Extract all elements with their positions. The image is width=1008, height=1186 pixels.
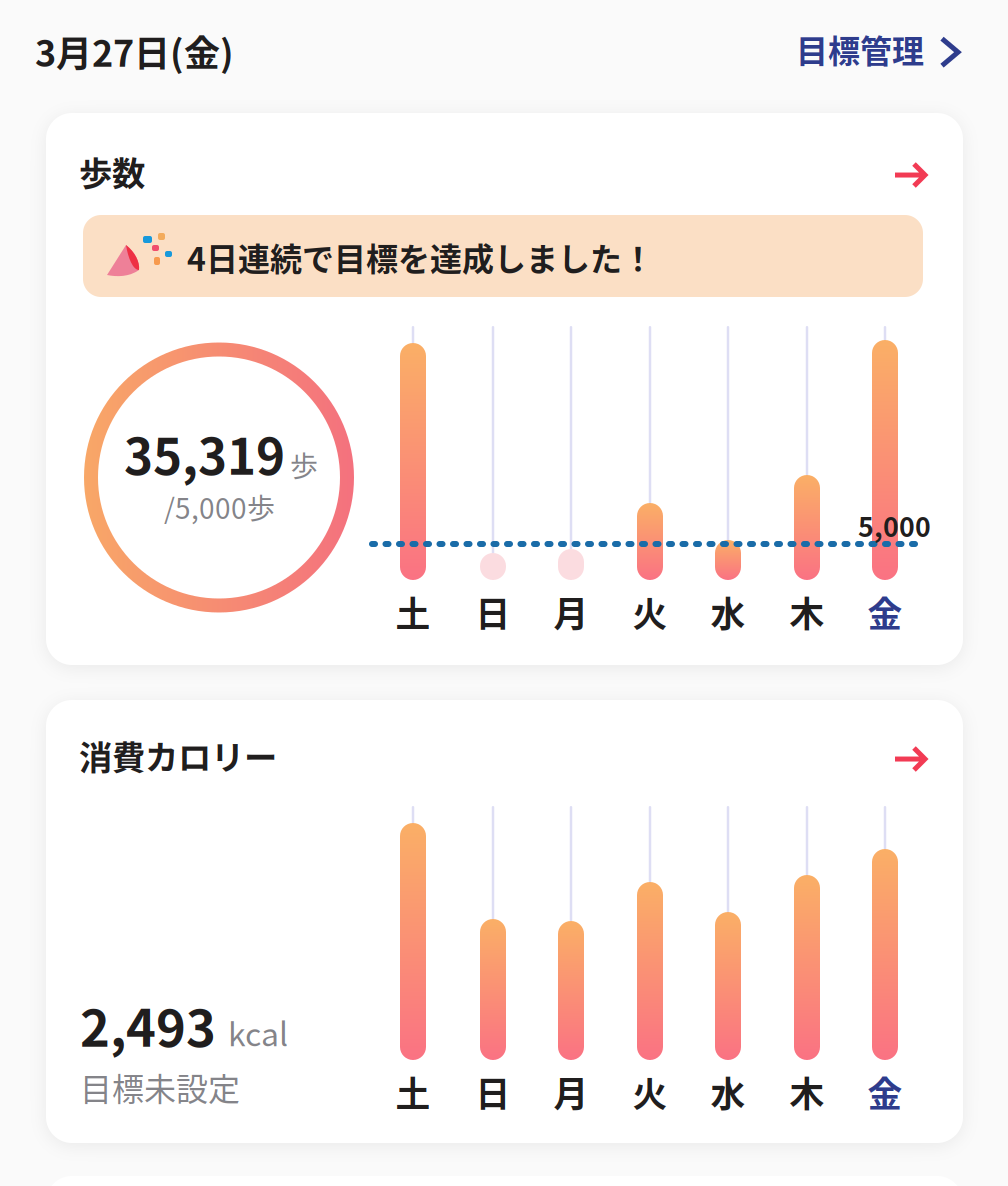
staticText: 金 [867, 587, 902, 637]
staticText: 木 [789, 1067, 824, 1117]
staticText: 3月27日(金) [35, 25, 234, 77]
staticText: 土 [395, 587, 430, 637]
staticText: 目標管理 [796, 26, 924, 72]
staticText: 歩数 [79, 147, 145, 195]
staticText: 金 [867, 1067, 902, 1117]
staticText: 日 [475, 587, 510, 637]
staticText: 火 [632, 1067, 667, 1117]
staticText: 月 [553, 587, 588, 637]
staticText: 2,493 [80, 988, 216, 1061]
staticText: 日 [475, 1067, 510, 1117]
staticText: 目標未設定 [80, 1064, 240, 1110]
staticText: 水 [710, 1067, 745, 1117]
button[interactable]: 歩数の詳細 [877, 146, 943, 204]
button[interactable]: 目標管理 [778, 14, 978, 84]
staticText: 35,319 [124, 417, 285, 489]
staticText: 歩 [290, 444, 318, 485]
staticText: 月 [553, 1067, 588, 1117]
button[interactable]: 消費カロリーの詳細 [877, 730, 943, 788]
staticText: 木 [789, 587, 824, 637]
staticText: 4日連続で目標を達成しました！ [187, 234, 654, 280]
staticText: 土 [395, 1067, 430, 1117]
staticText: 水 [710, 587, 745, 637]
staticText: 消費カロリー [79, 731, 277, 779]
staticText: 5,000 [858, 506, 931, 545]
staticText: 火 [632, 587, 667, 637]
staticText: kcal [228, 1009, 288, 1055]
staticText: /5,000歩 [164, 486, 275, 527]
